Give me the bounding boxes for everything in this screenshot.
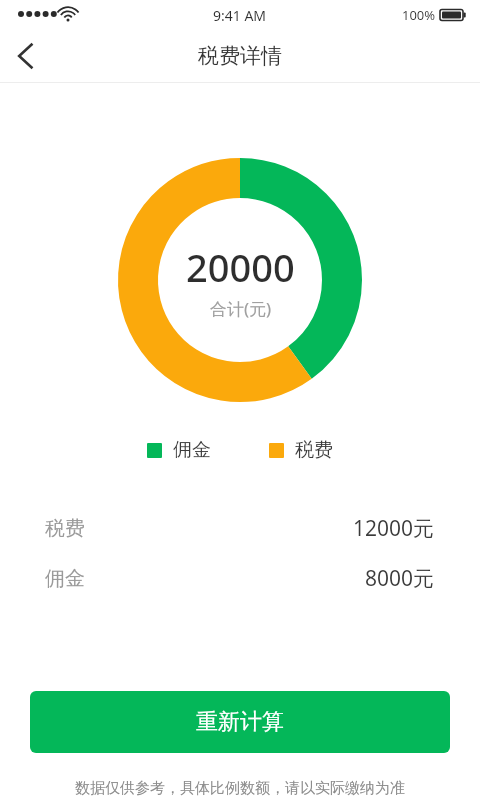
button[interactable]: 佣金 — [0, 564, 480, 592]
staticText: 税费详情 — [198, 43, 282, 69]
button[interactable]: 佣金 — [147, 438, 211, 462]
staticText: 100% — [402, 6, 436, 24]
staticText: 9:41 AM — [213, 6, 267, 25]
staticText: 税费 — [45, 516, 85, 541]
staticText: 数据仅供参考，具体比例数额，请以实际缴纳为准 — [20, 779, 460, 798]
button[interactable]: Back — [0, 30, 52, 82]
button[interactable]: 重新计算 — [30, 691, 450, 753]
staticText: 20000 — [186, 241, 295, 293]
staticText: 重新计算 — [196, 708, 284, 736]
button[interactable]: 税费 — [0, 514, 480, 542]
button[interactable]: 税费 — [269, 438, 333, 462]
staticText: 8000元 — [365, 564, 435, 592]
staticText: 12000元 — [353, 514, 435, 542]
staticText: 佣金 — [173, 438, 211, 462]
staticText: 税费 — [295, 438, 333, 462]
staticText: 佣金 — [45, 566, 85, 591]
staticText: 合计(元) — [210, 297, 272, 320]
